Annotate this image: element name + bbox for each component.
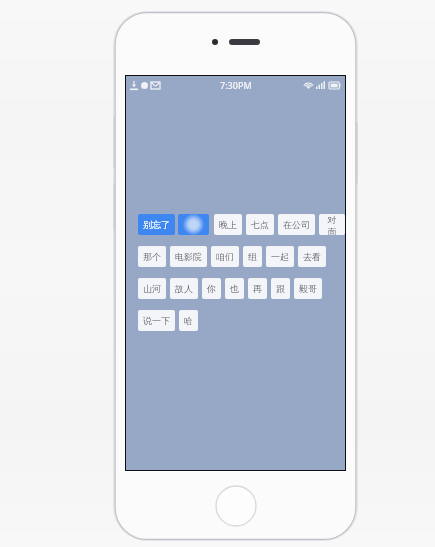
staticText: 毅哥 (299, 283, 317, 294)
staticText: 你 (207, 283, 216, 294)
button[interactable]: 山河 (138, 278, 166, 299)
button[interactable]: 说一下 (138, 310, 175, 331)
staticText: 哈 (184, 315, 193, 326)
staticText: 7:30PM (220, 79, 252, 91)
button[interactable]: 哈 (179, 310, 198, 331)
button[interactable]: 对面 (319, 214, 345, 235)
button[interactable]: 跟 (271, 278, 290, 299)
staticText: 再 (253, 283, 262, 294)
button[interactable]: 一起 (266, 246, 294, 267)
staticText: 在公司 (283, 219, 310, 230)
button[interactable]: 再 (248, 278, 267, 299)
button[interactable]: 也 (225, 278, 244, 299)
staticText: 去看 (303, 251, 321, 262)
staticText: 山河 (143, 283, 161, 294)
button[interactable]: 故人 (170, 278, 198, 299)
staticText: 七点 (251, 219, 269, 230)
staticText: 对面 (324, 214, 340, 235)
button[interactable]: Loading (178, 214, 209, 235)
button[interactable]: 电影院 (170, 246, 207, 267)
button[interactable]: 别忘了 (138, 214, 175, 235)
button[interactable]: 那个 (138, 246, 166, 267)
button[interactable]: 去看 (298, 246, 326, 267)
button[interactable]: 晚上 (214, 214, 242, 235)
button[interactable]: 咱们 (211, 246, 239, 267)
staticText: 组 (248, 251, 257, 262)
staticText: 那个 (143, 251, 161, 262)
staticText: 说一下 (143, 315, 170, 326)
button[interactable]: 七点 (246, 214, 274, 235)
button[interactable]: 毅哥 (294, 278, 322, 299)
staticText: 晚上 (219, 219, 237, 230)
button[interactable]: 你 (202, 278, 221, 299)
staticText: 也 (230, 283, 239, 294)
staticText: 电影院 (175, 251, 202, 262)
button[interactable]: 组 (243, 246, 262, 267)
staticText: 咱们 (216, 251, 234, 262)
staticText: 跟 (276, 283, 285, 294)
staticText: 故人 (175, 283, 193, 294)
staticText: 别忘了 (143, 219, 170, 230)
button[interactable]: 在公司 (278, 214, 315, 235)
staticText: 一起 (271, 251, 289, 262)
